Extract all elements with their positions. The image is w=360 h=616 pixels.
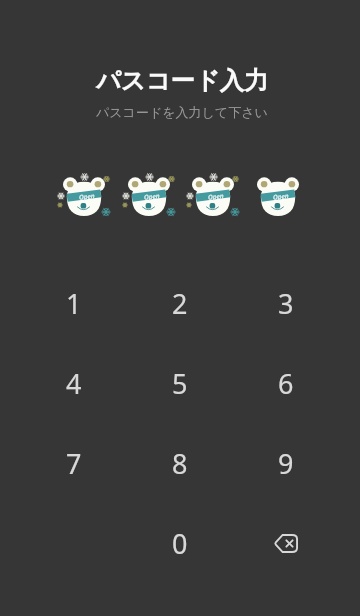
staticText: 4 bbox=[66, 365, 82, 402]
button[interactable]: 2 bbox=[127, 263, 233, 343]
staticText: 3 bbox=[278, 285, 294, 322]
other: Backspace bbox=[274, 534, 298, 553]
button[interactable]: 4 bbox=[21, 343, 127, 423]
button[interactable]: 7 bbox=[21, 423, 127, 503]
button[interactable]: 6 bbox=[233, 343, 339, 423]
button[interactable]: 8 bbox=[127, 423, 233, 503]
staticText: 9 bbox=[278, 445, 294, 482]
button[interactable]: 1 bbox=[21, 263, 127, 343]
staticText: パスコードを入力して下さい bbox=[96, 104, 268, 120]
staticText: パスコード入力 bbox=[96, 66, 269, 97]
staticText: 2 bbox=[172, 285, 188, 322]
button[interactable]: 3 bbox=[233, 263, 339, 343]
button[interactable]: 0 bbox=[127, 503, 233, 583]
staticText: Open bbox=[273, 191, 289, 202]
staticText: Open bbox=[208, 191, 224, 202]
staticText: 5 bbox=[172, 365, 188, 402]
button[interactable]: 9 bbox=[233, 423, 339, 503]
staticText: 8 bbox=[172, 445, 188, 482]
staticText: 7 bbox=[66, 445, 82, 482]
staticText: Open bbox=[144, 191, 160, 202]
staticText: 1 bbox=[66, 285, 82, 322]
button[interactable]: Backspace bbox=[233, 503, 339, 583]
staticText: 6 bbox=[278, 365, 294, 402]
button[interactable]: 5 bbox=[127, 343, 233, 423]
staticText: 0 bbox=[172, 525, 188, 562]
staticText: Open bbox=[79, 191, 95, 202]
